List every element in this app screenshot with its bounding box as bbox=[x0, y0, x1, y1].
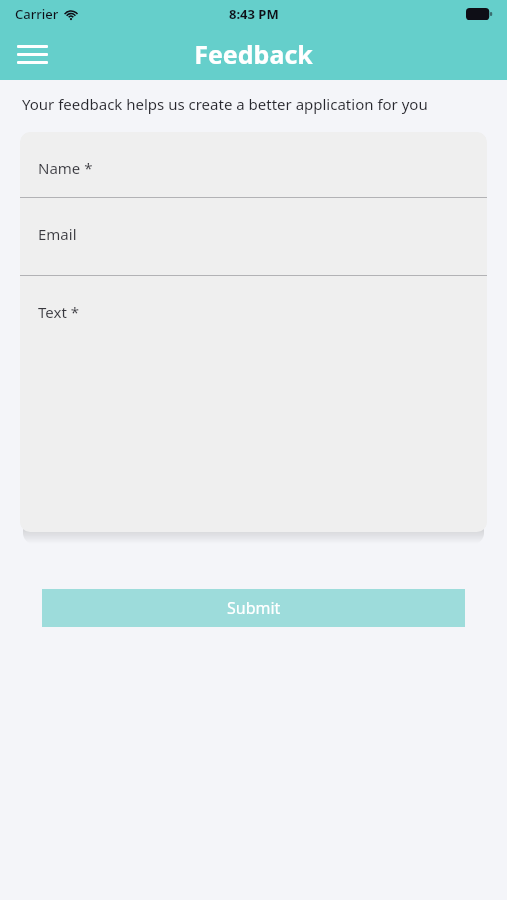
staticText: Carrier bbox=[15, 5, 59, 23]
button[interactable]: Text * bbox=[20, 276, 487, 532]
staticText: Feedback bbox=[194, 37, 313, 71]
button[interactable]: Name * bbox=[20, 132, 487, 197]
staticText: Text * bbox=[38, 302, 79, 322]
staticText: 8:43 PM bbox=[229, 5, 279, 23]
staticText: Email bbox=[38, 224, 77, 244]
staticText: Name * bbox=[38, 158, 93, 178]
staticText: Your feedback helps us create a better a… bbox=[22, 94, 485, 114]
staticText: Submit bbox=[227, 597, 281, 619]
button[interactable]: Submit bbox=[42, 589, 465, 627]
button[interactable]: Open navigation menu bbox=[10, 35, 54, 73]
button[interactable]: Email bbox=[20, 198, 487, 275]
